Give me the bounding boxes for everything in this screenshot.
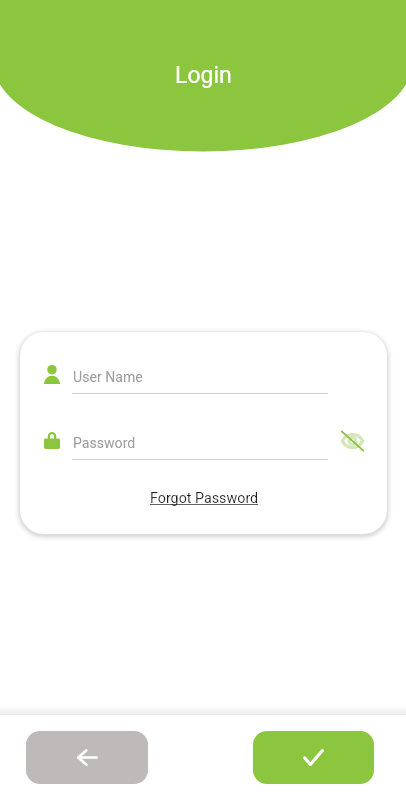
- button[interactable]: Toggle password visibility: [330, 419, 374, 463]
- staticText: User Name: [73, 369, 143, 386]
- staticText: Password: [73, 435, 136, 452]
- button[interactable]: Forgot Password: [150, 490, 259, 507]
- button[interactable]: Back: [26, 731, 148, 784]
- button[interactable]: Confirm: [253, 731, 374, 784]
- staticText: Forgot Password: [150, 490, 259, 507]
- staticText: Login: [175, 62, 232, 89]
